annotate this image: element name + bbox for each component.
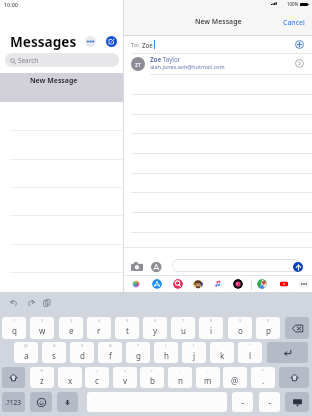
button[interactable]: App Store — [152, 279, 162, 289]
button[interactable]: Photos — [131, 279, 141, 289]
button[interactable]: Add contact — [295, 40, 304, 49]
staticText: .?123 — [5, 398, 22, 407]
button[interactable]: : — [196, 367, 220, 388]
button[interactable]: ? — [251, 367, 275, 388]
button[interactable]: # — [42, 342, 66, 363]
button[interactable]: * — [126, 342, 150, 363]
staticText: $ — [81, 343, 84, 348]
button[interactable]: YouTube — [279, 279, 289, 289]
staticText: 8 — [210, 318, 213, 323]
staticText: m — [204, 375, 212, 386]
staticText: Zoe Taylor — [150, 55, 181, 63]
button[interactable]: Emoji — [30, 392, 52, 412]
staticText: @ — [24, 343, 28, 348]
staticText: ( — [165, 343, 167, 348]
button[interactable]: Undo — [9, 298, 19, 308]
button[interactable]: ) — [182, 342, 206, 363]
button[interactable]: More apps — [299, 279, 309, 289]
staticText: ) — [193, 343, 195, 348]
button[interactable]: 5 — [115, 317, 139, 339]
staticText: s — [52, 350, 56, 361]
staticText: ; — [179, 368, 181, 373]
button[interactable]: / — [140, 367, 164, 388]
staticText: 6 — [154, 318, 157, 323]
button[interactable]: Memoji — [193, 279, 203, 289]
button[interactable]: New Message — [0, 73, 123, 102]
button[interactable]: ; — [168, 367, 192, 388]
button[interactable]: More options — [85, 36, 96, 47]
button[interactable]: Shift — [279, 367, 309, 388]
button[interactable]: " — [238, 342, 262, 363]
button[interactable]: – — [232, 392, 253, 412]
button[interactable]: , — [223, 367, 247, 388]
button[interactable]: Apps — [151, 261, 163, 273]
staticText: – — [241, 398, 245, 407]
staticText: - — [69, 368, 71, 373]
button[interactable]: @ — [14, 342, 38, 363]
button[interactable]: 0 — [256, 317, 280, 339]
button[interactable] — [172, 259, 301, 272]
button[interactable]: - — [58, 367, 82, 388]
staticText: 1 — [13, 318, 16, 323]
button[interactable]: ' — [210, 342, 234, 363]
staticText: – — [268, 398, 272, 407]
staticText: f — [109, 350, 112, 361]
button[interactable]: ZT — [124, 53, 312, 74]
button[interactable]: – — [259, 392, 280, 412]
button[interactable]: 2 — [30, 317, 54, 339]
staticText: ' — [222, 343, 223, 348]
staticText: 7 — [182, 318, 185, 323]
button[interactable]: 9 — [228, 317, 252, 339]
staticText: y — [153, 325, 158, 336]
staticText: j — [193, 350, 196, 361]
button[interactable]: 4 — [87, 317, 111, 339]
button[interactable]: Dictate — [57, 392, 78, 412]
button[interactable]: & — [98, 342, 122, 363]
button[interactable]: + — [85, 367, 109, 388]
staticText: = — [124, 368, 127, 373]
button[interactable]: Hide keyboard — [285, 392, 309, 412]
button[interactable]: New message — [106, 36, 117, 47]
staticText: @ — [231, 375, 239, 386]
button[interactable]: Shift — [2, 367, 25, 388]
button[interactable]: = — [113, 367, 137, 388]
button[interactable]: Music — [213, 279, 223, 289]
button[interactable]: .?123 — [2, 392, 25, 412]
staticText: c — [95, 375, 99, 386]
staticText: z — [40, 375, 44, 386]
button[interactable]: Send — [293, 262, 303, 272]
staticText: . — [262, 375, 265, 386]
button[interactable]: Cancel — [283, 18, 305, 28]
button[interactable]: Images — [173, 279, 183, 289]
staticText: r — [97, 325, 101, 336]
staticText: b — [150, 375, 155, 386]
staticText: 2 — [41, 318, 44, 323]
staticText: u — [181, 325, 186, 336]
button[interactable]: Backspace — [285, 317, 309, 339]
button[interactable]: % — [30, 367, 54, 388]
button[interactable]: 6 — [143, 317, 167, 339]
button[interactable]: 3 — [59, 317, 83, 339]
button[interactable]: 7 — [171, 317, 195, 339]
staticText: a — [24, 350, 29, 361]
button[interactable]: Camera — [131, 262, 143, 271]
button[interactable]: Maps — [257, 279, 267, 289]
staticText: 9 — [239, 318, 242, 323]
button[interactable]: $ — [70, 342, 94, 363]
button[interactable]: 8 — [199, 317, 223, 339]
button[interactable]: Return — [267, 342, 308, 363]
staticText: ZT — [135, 61, 142, 68]
staticText: 5 — [126, 318, 129, 323]
staticText: To: — [131, 41, 140, 49]
other: Contact details — [295, 59, 304, 68]
button[interactable]: Search — [5, 53, 119, 67]
button[interactable]: 1 — [2, 317, 26, 339]
staticText: g — [136, 350, 141, 361]
staticText: 4 — [98, 318, 101, 323]
button[interactable]: Redo — [26, 298, 36, 308]
button[interactable]: ( — [154, 342, 178, 363]
staticText: : — [207, 368, 209, 373]
button[interactable]: Paste — [42, 298, 52, 308]
button[interactable]: Apple Music — [233, 279, 243, 289]
